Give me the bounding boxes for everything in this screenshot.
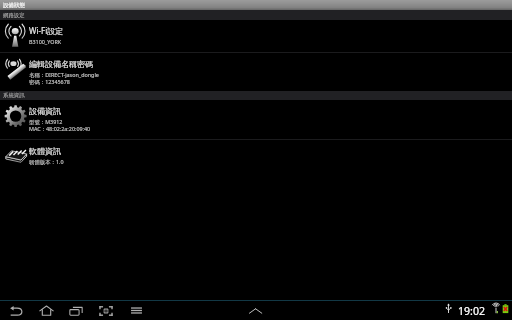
staticText: Wi-Fi設定 <box>29 25 64 36</box>
staticText: B3100_YORK <box>29 38 62 45</box>
button[interactable]: Expand <box>246 301 266 320</box>
button[interactable]: Screenshot <box>91 301 121 320</box>
staticText: 19:02 <box>458 304 486 318</box>
staticText: 型號：M3912 <box>29 118 63 125</box>
button[interactable]: Status <box>442 301 512 320</box>
staticText: 設備狀態 <box>3 2 25 9</box>
staticText: 系統資訊 <box>3 92 25 99</box>
button[interactable]: 編輯設備名稱密碼 <box>0 53 512 91</box>
button[interactable]: Wi-Fi設定 <box>0 20 512 52</box>
staticText: 設備資訊 <box>29 106 61 116</box>
staticText: 編輯設備名稱密碼 <box>29 59 93 69</box>
button[interactable]: Recent apps <box>61 301 91 320</box>
staticText: 網路設定 <box>3 12 25 19</box>
staticText: 韌體版本：1.0 <box>29 158 64 165</box>
staticText: 軟體資訊 <box>29 146 61 156</box>
button[interactable]: 設備資訊 <box>0 100 512 139</box>
button[interactable]: 軟體資訊 <box>0 140 512 178</box>
button[interactable]: Home <box>31 301 61 320</box>
staticText: 名稱：DIRECT-jason_dongle <box>29 71 99 78</box>
button[interactable]: Menu <box>121 301 151 320</box>
staticText: 密碼：12345678 <box>29 78 70 85</box>
button[interactable]: Back <box>1 301 31 320</box>
staticText: MAC：48:02:2a:20:09:40 <box>29 125 91 132</box>
